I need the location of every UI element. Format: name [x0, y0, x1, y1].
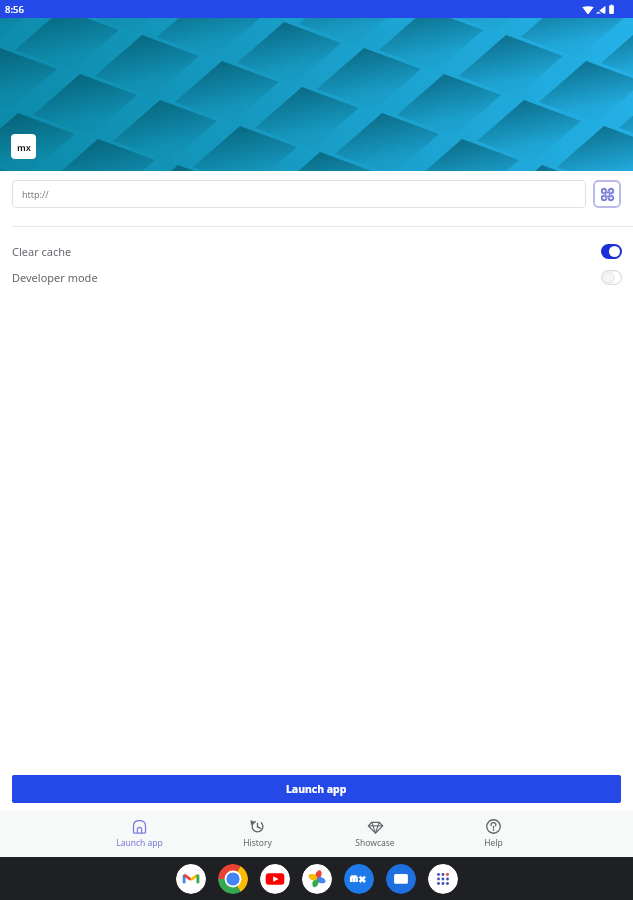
staticText: Help: [484, 837, 503, 849]
button[interactable]: MX: [344, 864, 374, 894]
staticText: Clear cache: [12, 244, 72, 259]
button[interactable]: Launch app: [12, 775, 621, 803]
staticText: Launch app: [116, 837, 163, 849]
staticText: 8:56: [5, 3, 24, 16]
button[interactable]: Photos: [302, 864, 332, 894]
staticText: Showcase: [355, 837, 395, 849]
button[interactable]: Messages: [386, 864, 416, 894]
staticText: History: [243, 837, 272, 849]
button[interactable]: Showcase: [316, 811, 434, 857]
staticText: http://: [22, 188, 49, 200]
staticText: Launch app: [286, 782, 347, 796]
button[interactable]: Clear cache: [0, 238, 633, 264]
button[interactable]: History: [198, 811, 316, 857]
button[interactable]: Gmail: [176, 864, 206, 894]
staticText: mx: [17, 141, 31, 153]
button[interactable]: Developer mode: [0, 264, 633, 290]
button[interactable]: All apps: [428, 864, 458, 894]
button[interactable]: Scan QR code: [593, 180, 621, 208]
button[interactable]: http://: [12, 180, 586, 208]
button[interactable]: Launch app: [80, 811, 198, 857]
staticText: Developer mode: [12, 270, 98, 285]
button[interactable]: YouTube: [260, 864, 290, 894]
button[interactable]: Help: [434, 811, 552, 857]
button[interactable]: Chrome: [218, 864, 248, 894]
